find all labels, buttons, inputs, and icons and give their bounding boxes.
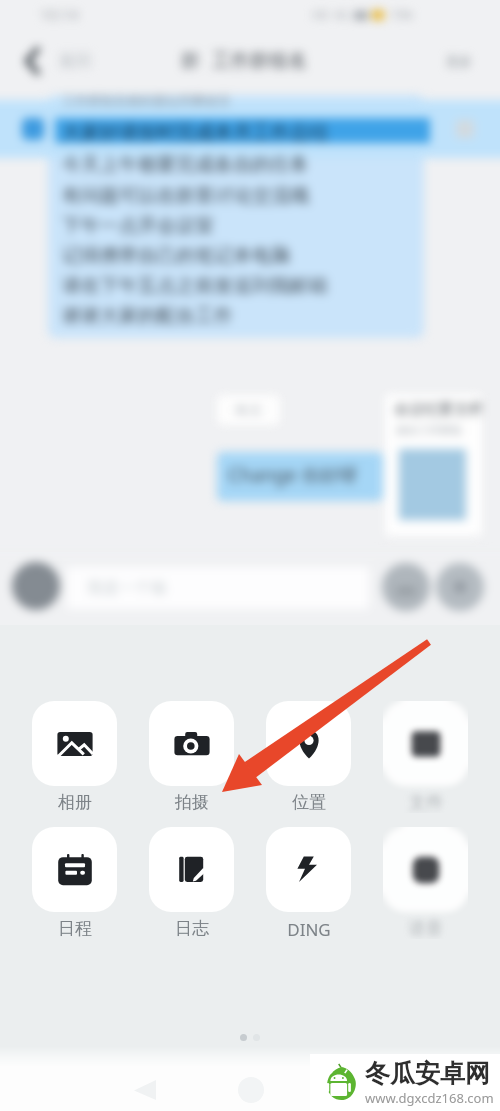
other: Home [238, 1077, 264, 1103]
staticText: 返回 [59, 51, 91, 71]
staticText: 我是一个输 [87, 578, 167, 598]
button[interactable]: 拍摄 [149, 701, 234, 813]
staticText: 位置 [292, 792, 326, 813]
staticText: 日程 [58, 918, 92, 939]
button[interactable]: 日程 [32, 827, 117, 939]
button[interactable]: DING [266, 827, 351, 941]
staticText: 73% [391, 7, 413, 22]
staticText: 语音 [409, 918, 443, 939]
staticText: 相册 [58, 792, 92, 813]
staticText: 更多 [446, 53, 472, 69]
other: Back [134, 1080, 156, 1100]
button[interactable]: 相册 [32, 701, 117, 813]
staticText: 会议纪要文档 [394, 400, 482, 419]
button[interactable]: 文件 [383, 701, 468, 813]
staticText: HD [312, 7, 329, 22]
button[interactable]: 位置 [266, 701, 351, 813]
other: Back [24, 47, 40, 75]
staticText: 大家好请按时完成本月工作总结 [62, 121, 328, 145]
staticText: DING [287, 918, 331, 941]
staticText: 工作群组名 [212, 49, 307, 73]
button[interactable]: 日志 [149, 827, 234, 939]
staticText: 文件 [409, 792, 443, 813]
staticText: 昨天 [236, 402, 262, 418]
staticText: 冬瓜安卓网 [365, 1058, 490, 1089]
button[interactable]: 语音 [383, 827, 468, 939]
staticText: 来自工作群组 [396, 423, 462, 437]
staticText: www.dgxcdz168.com [365, 1089, 494, 1107]
staticText: Change 你好呀 [228, 462, 359, 488]
staticText: 拍摄 [175, 792, 209, 813]
staticText: 日志 [175, 918, 209, 939]
staticText: 群 [181, 49, 200, 73]
staticText: 今天上午都要完成各自的任务 有问题可以在群里讨论交流哦 下午一点开会议室 记得携… [62, 153, 328, 327]
staticText: 工作群组名称的那位同事发言 [62, 92, 231, 108]
staticText: 10:14 [40, 4, 79, 24]
